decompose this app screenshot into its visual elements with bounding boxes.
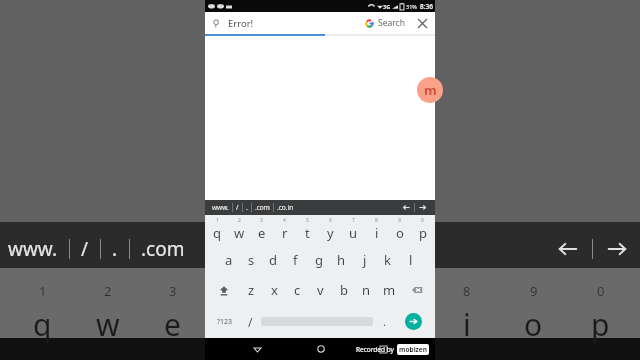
button[interactable]: 1 [206, 215, 228, 245]
staticText: 9 [530, 282, 538, 300]
button[interactable]: x [263, 275, 286, 305]
staticText: www. [8, 236, 58, 262]
staticText: o [524, 304, 543, 345]
button[interactable]: n [355, 275, 378, 305]
button[interactable]: j [353, 245, 376, 275]
button[interactable]: 8 [365, 215, 388, 245]
button[interactable]: Backspace [401, 275, 433, 305]
button[interactable]: 6 [319, 215, 342, 245]
staticText: q [213, 224, 221, 242]
button[interactable]: 2 [228, 215, 250, 245]
staticText: o [396, 224, 404, 242]
button[interactable]: g [307, 245, 330, 275]
staticText: .co.in [277, 203, 294, 212]
staticText: h [337, 251, 346, 269]
button[interactable]: Close [413, 14, 431, 32]
staticText: u [349, 224, 358, 242]
staticText: Error! [228, 17, 254, 30]
button[interactable]: / [240, 305, 261, 338]
staticText: 3 [169, 282, 177, 300]
button[interactable]: Search [363, 17, 407, 29]
button[interactable]: z [240, 275, 263, 305]
button[interactable]: k [376, 245, 399, 275]
staticText: 9 [398, 217, 401, 224]
staticText: k [384, 251, 391, 269]
staticText: f [293, 251, 298, 269]
button[interactable]: .co.in [274, 203, 297, 212]
staticText: 0 [421, 217, 424, 224]
button[interactable]: .com [252, 203, 273, 212]
button[interactable]: b [332, 275, 355, 305]
staticText: 8:36 [420, 2, 433, 11]
button[interactable]: Next [415, 203, 430, 212]
button[interactable]: Home [289, 338, 352, 360]
staticText: e [164, 304, 181, 345]
staticText: p [591, 304, 610, 345]
button[interactable]: 7 [342, 215, 365, 245]
staticText: Recorded by [356, 345, 394, 354]
staticText: 2 [104, 282, 112, 300]
staticText: i [375, 224, 379, 242]
button[interactable]: Back [225, 338, 289, 360]
staticText: w [96, 304, 120, 345]
button[interactable]: s [240, 245, 262, 275]
staticText: w [234, 224, 245, 242]
staticText: .com [255, 203, 270, 212]
staticText: 2 [238, 217, 241, 224]
staticText: . [383, 314, 386, 329]
staticText: 1 [216, 217, 219, 224]
staticText: 3 [260, 217, 263, 224]
button[interactable]: www. [209, 203, 232, 212]
button[interactable]: 3 [250, 215, 273, 245]
staticText: / [248, 314, 253, 330]
button[interactable]: Go [405, 313, 422, 330]
staticText: n [362, 281, 371, 299]
staticText: www. [212, 203, 229, 212]
button[interactable]: v [309, 275, 332, 305]
staticText: 8 [463, 282, 471, 300]
button[interactable]: Error! [228, 17, 363, 30]
staticText: p [419, 224, 427, 242]
staticText: v [317, 281, 324, 299]
staticText: c [294, 281, 301, 299]
button[interactable]: f [284, 245, 307, 275]
button[interactable]: Previous [399, 203, 414, 212]
button[interactable]: Recents [352, 338, 415, 360]
staticText: . [112, 236, 118, 262]
staticText: 4 [283, 217, 286, 224]
staticText: 31% [406, 3, 417, 10]
staticText: r [282, 224, 288, 242]
staticText: / [236, 203, 239, 212]
staticText: 5 [306, 217, 309, 224]
button[interactable]: 0 [411, 215, 434, 245]
button[interactable]: m [378, 275, 401, 305]
button[interactable]: . [243, 203, 251, 212]
staticText: i [463, 304, 471, 345]
staticText: . [246, 203, 248, 212]
button[interactable]: / [233, 203, 242, 212]
staticText: s [248, 251, 255, 269]
other: Search icon [212, 19, 221, 28]
button[interactable]: l [399, 245, 422, 275]
staticText: d [269, 251, 277, 269]
staticText: e [258, 224, 266, 242]
staticText: m [424, 81, 437, 99]
button[interactable]: 4 [273, 215, 296, 245]
staticText: ?123 [217, 317, 233, 327]
staticText: 0 [597, 282, 605, 300]
staticText: z [248, 281, 255, 299]
button[interactable]: Shift [207, 275, 240, 305]
staticText: 8 [375, 217, 378, 224]
button[interactable]: 5 [296, 215, 319, 245]
button[interactable]: c [286, 275, 309, 305]
button[interactable]: . [373, 305, 396, 338]
staticText: j [363, 251, 367, 269]
button[interactable]: d [262, 245, 284, 275]
button[interactable]: 9 [388, 215, 411, 245]
button[interactable]: a [218, 245, 240, 275]
button[interactable]: h [330, 245, 353, 275]
staticText: q [33, 304, 52, 345]
staticText: 7 [352, 217, 355, 224]
button[interactable]: ?123 [209, 305, 240, 338]
